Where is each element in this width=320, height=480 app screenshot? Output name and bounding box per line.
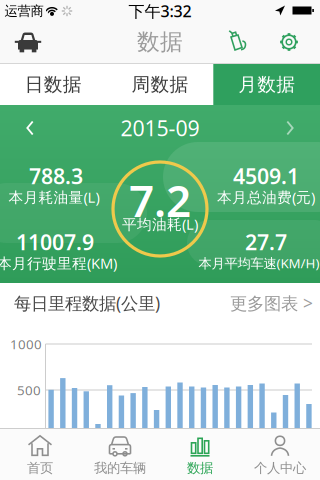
staticText: 首页: [27, 460, 53, 476]
staticText: 本月行驶里程(KM): [0, 253, 117, 273]
button[interactable]: 月数据: [213, 64, 320, 105]
staticText: 1000: [10, 335, 42, 353]
button[interactable]: 周数据: [107, 64, 213, 105]
staticText: 11007.9: [16, 228, 94, 256]
staticText: 日数据: [25, 73, 82, 96]
button[interactable]: [224, 29, 250, 55]
staticText: 更多图表 >: [230, 291, 313, 314]
staticText: 我的车辆: [94, 460, 146, 476]
button[interactable]: [284, 120, 295, 136]
staticText: 月数据: [238, 73, 295, 96]
staticText: 个人中心: [254, 460, 306, 476]
button[interactable]: [278, 31, 300, 53]
button[interactable]: 日数据: [0, 64, 107, 105]
staticText: 每日里程数据(公里): [14, 291, 160, 314]
staticText: 本月耗油量(L): [8, 187, 99, 207]
staticText: 周数据: [131, 73, 188, 96]
button[interactable]: [24, 120, 35, 136]
staticText: 数据: [187, 460, 213, 476]
staticText: 本月总油费(元): [217, 187, 315, 207]
button[interactable]: 数据: [160, 430, 240, 480]
staticText: 平均油耗(L): [122, 214, 198, 234]
staticText: 7.2: [129, 171, 191, 229]
staticText: 2015-09: [120, 114, 199, 142]
button[interactable]: 个人中心: [240, 430, 320, 480]
staticText: 本月平均车速(KM/H): [198, 254, 319, 272]
staticText: 27.7: [245, 228, 287, 256]
staticText: 下午3:32: [128, 0, 191, 22]
staticText: 数据: [137, 28, 183, 56]
button[interactable]: 我的车辆: [80, 430, 160, 480]
button[interactable]: 更多图表 >: [230, 291, 313, 314]
staticText: 500: [17, 381, 41, 399]
staticText: 4509.1: [233, 162, 299, 190]
button[interactable]: [11, 30, 45, 54]
staticText: 运营商: [4, 3, 43, 19]
button[interactable]: 首页: [0, 430, 80, 480]
staticText: 788.3: [29, 162, 83, 190]
